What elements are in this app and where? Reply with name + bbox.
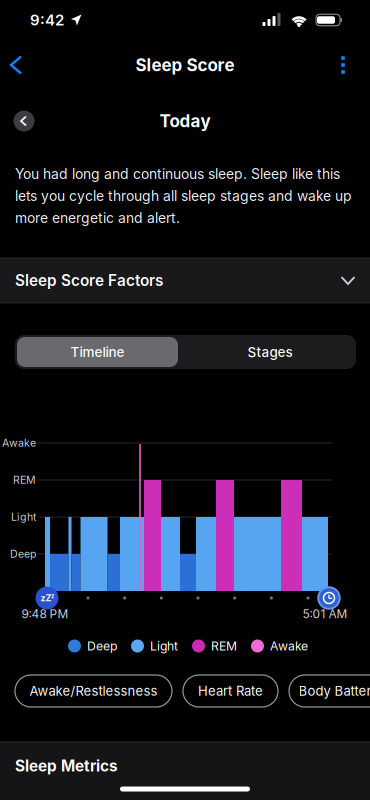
staticText: Sleep Score	[135, 55, 234, 75]
staticText: You had long and continuous sleep. Sleep…	[15, 166, 340, 182]
staticText: lets you cycle through all sleep stages …	[15, 188, 352, 204]
button[interactable]: Body Battery	[289, 675, 370, 707]
staticText: Timeline	[70, 344, 124, 360]
staticText: Deep	[10, 548, 36, 560]
staticText: 9:42	[30, 11, 64, 29]
staticText: Sleep Metrics	[15, 757, 118, 775]
staticText: Today	[159, 111, 210, 131]
staticText: REM	[13, 474, 36, 486]
staticText: Body Battery	[298, 683, 370, 699]
staticText: REM	[211, 639, 237, 653]
staticText: Deep	[87, 639, 117, 653]
button[interactable]: Timeline	[17, 337, 178, 367]
staticText: 9:48 PM	[21, 607, 68, 621]
staticText: zZ	[40, 593, 51, 603]
button[interactable]: Heart Rate	[183, 675, 278, 707]
button[interactable]: Back	[3, 48, 29, 81]
staticText: Light	[150, 639, 178, 653]
staticText: more energetic and alert.	[15, 210, 180, 226]
staticText: Heart Rate	[198, 683, 263, 699]
button[interactable]: More options	[333, 48, 353, 82]
staticText: z	[51, 592, 54, 600]
staticText: 5:01 AM	[302, 607, 347, 621]
button[interactable]: Awake/Restlessness	[15, 675, 172, 707]
staticText: Sleep Score Factors	[15, 271, 163, 290]
staticText: Awake/Restlessness	[29, 683, 157, 699]
button[interactable]: Sleep Score Factors	[15, 258, 355, 303]
staticText: Light	[11, 511, 36, 523]
staticText: Stages	[247, 344, 292, 360]
staticText: Awake	[2, 437, 36, 449]
button[interactable]: Stages	[189, 337, 350, 367]
button[interactable]: Previous day	[13, 110, 34, 131]
staticText: Awake	[270, 639, 308, 653]
